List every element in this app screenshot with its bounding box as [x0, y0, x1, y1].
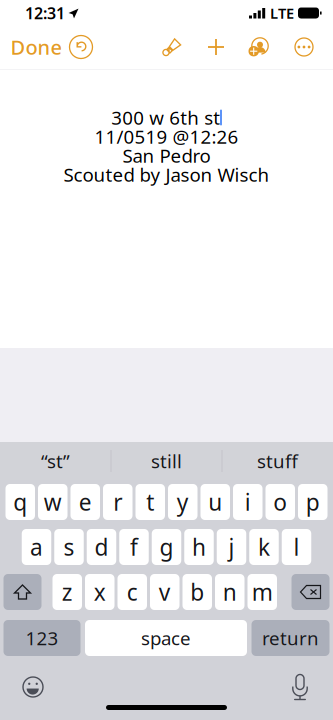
button[interactable]: return [251, 620, 329, 656]
button[interactable]: n [215, 574, 244, 610]
button[interactable]: q [5, 484, 35, 520]
staticText: n [223, 577, 237, 607]
button[interactable]: h [184, 529, 214, 565]
staticText: “st” [41, 449, 70, 473]
button[interactable]: More [282, 28, 326, 66]
staticText: Scouted by Jason Wisch [63, 162, 269, 187]
staticText: space [141, 626, 191, 650]
staticText: l [293, 532, 299, 562]
button[interactable]: w [38, 484, 67, 520]
staticText: q [13, 487, 27, 517]
staticText: j [228, 532, 234, 562]
button[interactable]: f [119, 529, 149, 565]
button[interactable]: m [247, 574, 277, 610]
staticText: 300 w 6th st [111, 105, 220, 130]
staticText: LTE [270, 3, 294, 23]
button[interactable]: still [111, 442, 222, 480]
button[interactable]: e [70, 484, 100, 520]
button[interactable]: o [265, 484, 295, 520]
button[interactable]: Delete [291, 574, 329, 610]
button[interactable]: y [168, 484, 197, 520]
button[interactable]: l [282, 529, 311, 565]
button[interactable]: Share [238, 28, 282, 66]
button[interactable]: Shift [3, 574, 41, 610]
staticText: p [306, 487, 320, 517]
button[interactable]: x [85, 574, 114, 610]
staticText: c [127, 577, 138, 607]
button[interactable]: a [22, 529, 51, 565]
staticText: San Pedro [122, 143, 210, 168]
staticText: y [177, 487, 189, 517]
staticText: s [63, 532, 74, 562]
staticText: v [159, 577, 171, 607]
button[interactable]: Add [194, 28, 238, 66]
button[interactable]: Emoji [11, 670, 55, 704]
staticText: a [30, 532, 43, 562]
staticText: g [159, 532, 173, 562]
staticText: k [258, 532, 270, 562]
button[interactable]: Markup [150, 28, 194, 66]
staticText: d [94, 532, 108, 562]
staticText: x [94, 577, 106, 607]
staticText: b [190, 577, 204, 607]
button[interactable]: “st” [0, 442, 111, 480]
button[interactable]: j [217, 529, 246, 565]
button[interactable]: space [85, 620, 247, 656]
button[interactable]: z [52, 574, 82, 610]
button[interactable]: k [249, 529, 279, 565]
button[interactable]: t [135, 484, 165, 520]
staticText: return [262, 626, 319, 650]
staticText: still [151, 449, 182, 473]
button[interactable]: d [87, 529, 116, 565]
button[interactable]: p [298, 484, 327, 520]
staticText: Done [10, 34, 61, 60]
button[interactable]: Undo [62, 27, 100, 67]
button[interactable]: 123 [3, 620, 80, 656]
staticText: 12:31 [25, 2, 65, 24]
staticText: stuff [257, 449, 298, 473]
button[interactable]: s [54, 529, 84, 565]
button[interactable]: u [200, 484, 230, 520]
staticText: f [130, 532, 138, 562]
staticText: o [273, 487, 287, 517]
staticText: r [113, 487, 122, 517]
staticText: 11/0519 @12:26 [94, 124, 238, 149]
staticText: 123 [25, 626, 58, 650]
button[interactable]: v [150, 574, 179, 610]
staticText: m [252, 577, 273, 607]
staticText: w [44, 487, 62, 517]
button[interactable]: Dictate [278, 670, 322, 704]
button[interactable]: c [117, 574, 147, 610]
staticText: h [192, 532, 206, 562]
button[interactable]: stuff [222, 442, 333, 480]
button[interactable]: r [103, 484, 132, 520]
button[interactable]: g [152, 529, 181, 565]
staticText: i [245, 487, 251, 517]
staticText: u [208, 487, 222, 517]
staticText: e [79, 487, 92, 517]
button[interactable]: b [182, 574, 212, 610]
staticText: t [146, 487, 154, 517]
button[interactable]: Done [10, 27, 62, 67]
staticText: z [62, 577, 73, 607]
button[interactable]: i [233, 484, 262, 520]
